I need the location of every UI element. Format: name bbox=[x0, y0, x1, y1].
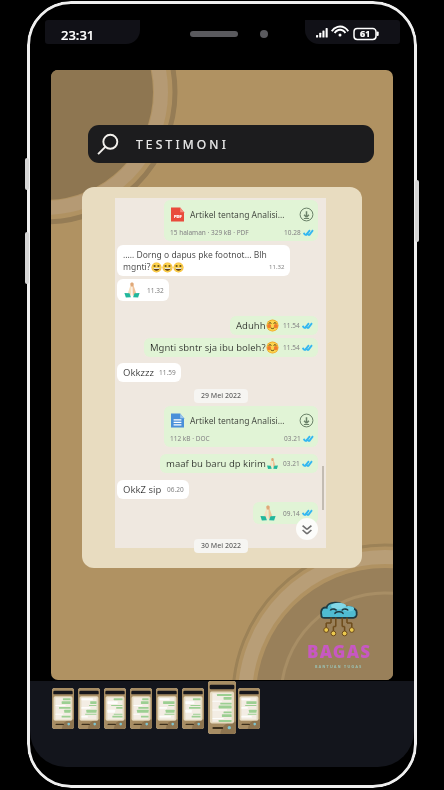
button[interactable]: Screenshot 7 bbox=[208, 681, 236, 734]
button[interactable]: Screenshot 2 bbox=[78, 688, 100, 729]
staticText: 29 Mei 2022 bbox=[201, 391, 241, 401]
staticText: Artikel tentang Analisi… bbox=[190, 209, 296, 221]
staticText: BANTUAN TUGAS bbox=[315, 664, 363, 669]
staticText: 112 kB · DOC bbox=[170, 434, 210, 443]
staticText: 11.54 bbox=[283, 343, 300, 352]
staticText: BAGAS bbox=[307, 640, 372, 663]
button[interactable]: Screenshot 6 bbox=[182, 688, 204, 729]
button[interactable]: Artikel tentang Analisi… bbox=[164, 406, 318, 447]
staticText: PDF bbox=[174, 214, 182, 219]
button[interactable]: 11.32 bbox=[117, 279, 169, 301]
staticText: 03.21 bbox=[284, 434, 301, 443]
staticText: 11.32 bbox=[269, 263, 285, 271]
staticText: 30 Mei 2022 bbox=[201, 541, 241, 551]
staticText: Mgnti sbntr sja ibu boleh? bbox=[150, 341, 266, 354]
other: Download bbox=[299, 413, 314, 428]
button[interactable]: 09.14 bbox=[253, 502, 318, 524]
button[interactable]: Okkzzz bbox=[117, 363, 181, 382]
button[interactable]: Screenshot 3 bbox=[104, 688, 126, 729]
staticText: ..… Dorng o dapus pke footnot... Blh bbox=[123, 249, 267, 261]
staticText: 10.28 bbox=[284, 228, 301, 237]
button[interactable]: maaf bu baru dp kirim bbox=[160, 454, 318, 473]
staticText: mgnti? bbox=[123, 261, 151, 273]
button[interactable]: OkkZ sip bbox=[117, 480, 189, 499]
other: Download bbox=[299, 207, 314, 222]
button[interactable]: Screenshot 8 bbox=[238, 688, 260, 729]
staticText: 06.20 bbox=[167, 485, 184, 494]
staticText: Artikel tentang Analisi… bbox=[190, 415, 296, 427]
button[interactable]: Mgnti sbntr sja ibu boleh? bbox=[144, 338, 318, 357]
staticText: 11.59 bbox=[159, 368, 176, 377]
staticText: 11.32 bbox=[147, 286, 164, 295]
staticText: 03.21 bbox=[283, 459, 300, 468]
staticText: Okkzzz bbox=[123, 366, 154, 379]
button[interactable]: PDF bbox=[164, 200, 318, 241]
staticText: maaf bu baru dp kirim bbox=[166, 457, 266, 470]
staticText: OkkZ sip bbox=[123, 483, 162, 496]
button[interactable]: Screenshot 1 bbox=[52, 688, 74, 729]
staticText: 23:31 bbox=[61, 26, 95, 44]
button[interactable]: Search bbox=[88, 125, 374, 163]
button[interactable]: ..… Dorng o dapus pke footnot... Blh bbox=[117, 245, 290, 276]
staticText: 15 halaman · 329 kB · PDF bbox=[170, 228, 249, 237]
button[interactable]: Screenshot 5 bbox=[156, 688, 178, 729]
staticText: Aduhh bbox=[236, 319, 266, 332]
staticText: 09.14 bbox=[283, 509, 300, 518]
button[interactable]: Aduhh bbox=[230, 316, 318, 335]
staticText: 11.54 bbox=[283, 321, 300, 330]
other: Search bbox=[98, 133, 120, 155]
staticText: 61 bbox=[360, 27, 371, 39]
staticText: TESTIMONI bbox=[136, 136, 229, 152]
button[interactable]: Scroll to bottom bbox=[296, 518, 318, 540]
button[interactable]: Screenshot 4 bbox=[130, 688, 152, 729]
